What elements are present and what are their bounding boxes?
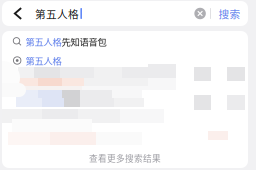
staticText: 搜索: [218, 6, 240, 21]
staticText: 第五人格: [35, 6, 79, 21]
button[interactable]: Back: [2, 1, 34, 26]
button[interactable]: 第五人格: [2, 32, 248, 51]
staticText: 第五人格: [26, 54, 62, 67]
staticText: 第五人格: [26, 35, 62, 48]
staticText: 先知语音包: [62, 35, 107, 48]
button[interactable]: Clear text: [190, 1, 210, 26]
button[interactable]: 搜索: [211, 1, 248, 26]
staticText: 查看更多搜索结果: [89, 152, 161, 164]
button[interactable]: 第五人格: [2, 51, 248, 70]
button[interactable]: 查看更多搜索结果: [2, 148, 248, 168]
